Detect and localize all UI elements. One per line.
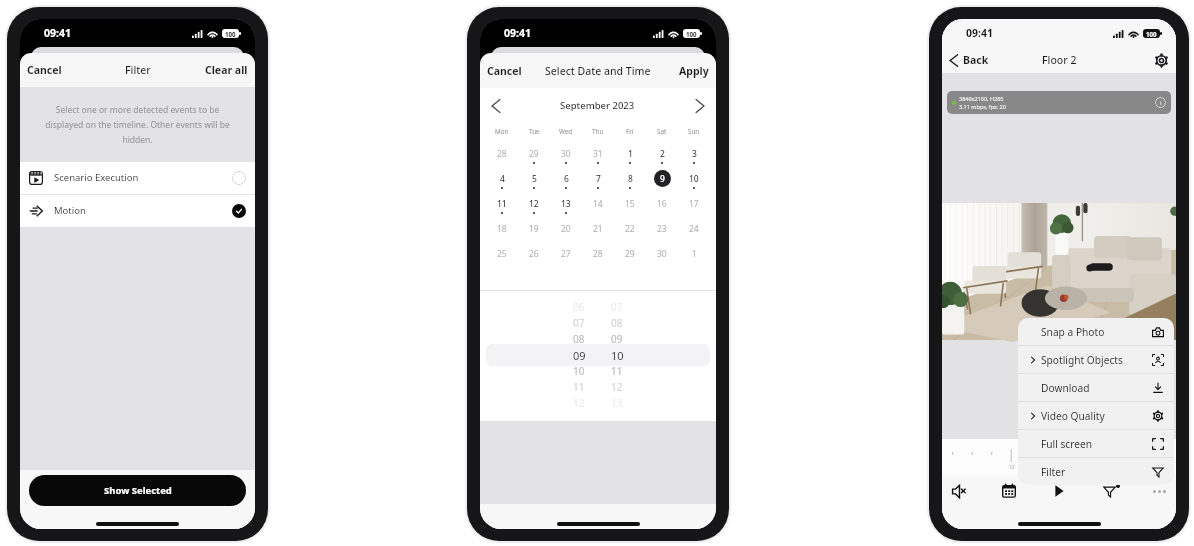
button[interactable]: 14 — [582, 195, 614, 220]
button[interactable]: 13 — [550, 195, 582, 220]
staticText: Cancel — [27, 63, 62, 77]
staticText: 09:41 — [504, 26, 531, 40]
staticText: 100 — [1146, 30, 1157, 38]
button[interactable]: 21 — [582, 220, 614, 245]
staticText: 10 — [611, 348, 624, 363]
button[interactable]: 2 — [646, 145, 678, 170]
button[interactable]: Play — [1046, 478, 1072, 504]
staticText: 3 — [692, 148, 697, 160]
button[interactable]: 27 — [550, 245, 582, 270]
button[interactable]: 9 — [646, 170, 678, 195]
button[interactable]: Spotlight Objects — [1018, 346, 1174, 373]
button[interactable]: 20 — [550, 220, 582, 245]
staticText: Wed — [559, 127, 573, 136]
staticText: 29 — [625, 248, 635, 260]
staticText: 09 — [573, 348, 586, 363]
staticText: Scenario Execution — [54, 171, 139, 184]
button[interactable]: Previous month — [486, 96, 506, 116]
button[interactable]: Mute — [946, 478, 972, 504]
button[interactable]: 24 — [678, 220, 710, 245]
button[interactable]: 28 — [486, 145, 518, 170]
button[interactable]: Show Selected — [29, 475, 246, 506]
button[interactable]: 18 — [486, 220, 518, 245]
staticText: 12 — [573, 396, 585, 410]
button[interactable]: 1 — [678, 245, 710, 270]
staticText: Motion — [54, 204, 86, 217]
staticText: Filter — [1041, 465, 1066, 479]
staticText: Full screen — [1041, 437, 1093, 451]
button[interactable]: 1 — [614, 145, 646, 170]
staticText: 06 — [573, 300, 585, 314]
button[interactable]: 29 — [614, 245, 646, 270]
button[interactable]: 7 — [582, 170, 614, 195]
staticText: 27 — [561, 248, 571, 260]
button[interactable]: 10 — [678, 170, 710, 195]
button[interactable]: Next month — [690, 96, 710, 116]
staticText: 1 — [692, 248, 697, 260]
button[interactable]: 25 — [486, 245, 518, 270]
button[interactable]: Calendar — [996, 478, 1022, 504]
button[interactable]: 30 — [550, 145, 582, 170]
button[interactable]: 17 — [678, 195, 710, 220]
button[interactable]: 22 — [614, 220, 646, 245]
button[interactable]: Video Quality — [1018, 402, 1174, 429]
staticText: 10 — [573, 364, 585, 378]
staticText: Tue — [529, 127, 540, 136]
staticText: Cancel — [487, 64, 522, 78]
staticText: 25 — [497, 248, 507, 260]
button[interactable]: Filter — [1096, 478, 1122, 504]
staticText: 30 — [657, 248, 667, 260]
button[interactable]: 26 — [518, 245, 550, 270]
staticText: 3840x2160, H265 — [959, 95, 1004, 102]
staticText: 13 — [1009, 464, 1015, 470]
button[interactable]: 6 — [550, 170, 582, 195]
button[interactable]: Snap a Photo — [1018, 318, 1174, 345]
staticText: Video Quality — [1041, 409, 1105, 423]
button[interactable]: Clear all — [203, 59, 250, 81]
button[interactable]: Motion — [20, 195, 255, 227]
staticText: Thu — [592, 127, 604, 136]
button[interactable]: 23 — [646, 220, 678, 245]
button[interactable]: Filter — [1018, 458, 1174, 485]
button[interactable]: 12 — [518, 195, 550, 220]
staticText: 26 — [529, 248, 539, 260]
staticText: September 2023 — [560, 99, 635, 112]
staticText: 08 — [611, 316, 623, 330]
button[interactable]: 28 — [582, 245, 614, 270]
staticText: 11 — [497, 198, 507, 210]
button[interactable]: Download — [1018, 374, 1174, 401]
button[interactable]: 29 — [518, 145, 550, 170]
button[interactable]: Apply — [677, 60, 711, 82]
button[interactable]: 30 — [646, 245, 678, 270]
button[interactable]: 3 — [678, 145, 710, 170]
staticText: 15 — [625, 198, 635, 210]
staticText: 18 — [497, 223, 507, 235]
button[interactable]: 5 — [518, 170, 550, 195]
button[interactable]: 19 — [518, 220, 550, 245]
staticText: Sun — [688, 127, 700, 136]
button[interactable]: 16 — [646, 195, 678, 220]
button[interactable]: 15 — [614, 195, 646, 220]
button[interactable]: Cancel — [25, 59, 64, 81]
button[interactable]: 31 — [582, 145, 614, 170]
staticText: 13 — [611, 396, 623, 410]
staticText: 28 — [593, 248, 603, 260]
staticText: 14 — [593, 198, 603, 210]
button[interactable]: Full screen — [1018, 430, 1174, 457]
button[interactable]: 11 — [486, 195, 518, 220]
button[interactable]: 3840x2160, H265 — [947, 91, 1171, 114]
staticText: Sat — [657, 127, 667, 136]
staticText: 09 — [611, 332, 623, 346]
button[interactable]: Back — [946, 50, 991, 70]
button[interactable]: 4 — [486, 170, 518, 195]
staticText: 1 — [628, 148, 633, 160]
button[interactable]: Settings — [1152, 51, 1171, 70]
staticText: Filter — [125, 63, 151, 77]
staticText: 09:41 — [44, 26, 71, 40]
button[interactable]: Cancel — [485, 60, 524, 82]
staticText: 09:41 — [966, 26, 993, 40]
button[interactable]: More options — [1146, 478, 1172, 504]
button[interactable]: 8 — [614, 170, 646, 195]
staticText: 23 — [657, 223, 667, 235]
button[interactable]: Scenario Execution — [20, 162, 255, 194]
